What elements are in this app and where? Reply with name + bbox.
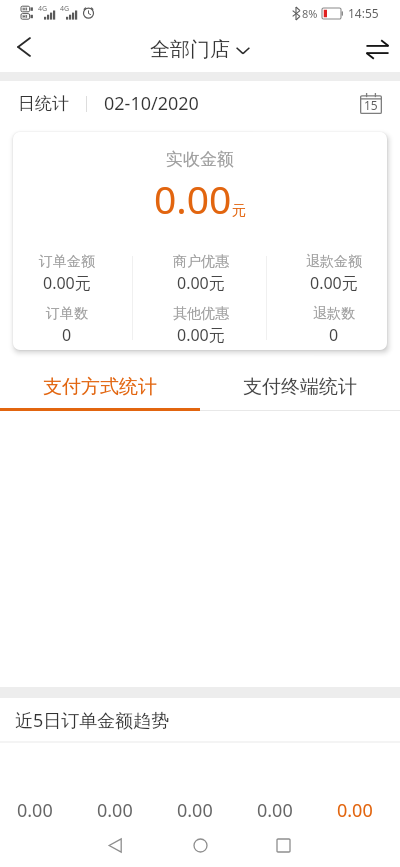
button[interactable]: 退款数 [267, 302, 387, 348]
staticText: 0.00 [97, 798, 133, 823]
staticText: 其他优惠 [173, 305, 229, 323]
staticText: 0.00 [154, 172, 232, 225]
button[interactable]: 支付方式统计 [0, 365, 200, 408]
staticText: 0.00 [177, 798, 213, 823]
staticText: 退款数 [313, 305, 355, 323]
staticText: 全部门店 [150, 37, 230, 62]
staticText: 0 [329, 324, 339, 346]
staticText: 日统计 [18, 93, 69, 114]
button[interactable]: 商户优惠 [134, 250, 267, 296]
staticText: 0.00 [257, 798, 293, 823]
staticText: 0.00 [337, 798, 373, 823]
staticText: 订单数 [46, 305, 88, 323]
button[interactable]: 全部门店 [150, 37, 251, 62]
staticText: 实收金额 [13, 149, 387, 170]
staticText: 0.00元 [310, 272, 358, 294]
staticText: 订单金额 [39, 253, 95, 271]
staticText: 元 [232, 202, 246, 220]
button[interactable]: 退款金额 [267, 250, 387, 296]
staticText: 14:55 [348, 5, 379, 21]
button[interactable]: Pick date [356, 88, 386, 118]
staticText: 支付终端统计 [243, 375, 357, 399]
button[interactable]: 支付终端统计 [200, 365, 400, 408]
staticText: 4G [60, 4, 70, 14]
button[interactable]: Back [92, 823, 138, 867]
button[interactable]: Switch statistics [354, 26, 400, 72]
staticText: 商户优惠 [173, 253, 229, 271]
staticText: 4G [38, 4, 48, 14]
button[interactable]: Home [177, 823, 223, 867]
staticText: 0.00 [17, 798, 53, 823]
staticText: 0.00元 [177, 272, 225, 294]
button[interactable]: Recent apps [260, 823, 306, 867]
staticText: 支付方式统计 [43, 375, 157, 399]
staticText: 近5日订单金额趋势 [15, 708, 170, 733]
staticText: 15 [364, 97, 378, 113]
button[interactable]: 订单金额 [13, 250, 134, 296]
staticText: 退款金额 [306, 253, 362, 271]
staticText: 0.00元 [177, 324, 225, 346]
staticText: 8% [302, 6, 318, 21]
staticText: 0.00元 [43, 272, 91, 294]
staticText: 0 [62, 324, 72, 346]
staticText: 02-10/2020 [104, 91, 199, 116]
button[interactable]: 订单数 [13, 302, 134, 348]
button[interactable]: 其他优惠 [134, 302, 267, 348]
button[interactable]: Back [0, 26, 46, 72]
